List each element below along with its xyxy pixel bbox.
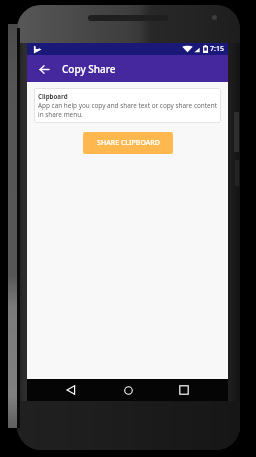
- staticText: 7:15: [210, 44, 224, 54]
- button[interactable]: Home: [119, 381, 137, 399]
- button[interactable]: Back: [62, 381, 80, 399]
- button[interactable]: Recent apps: [175, 381, 193, 399]
- staticText: App can help you copy and share text or …: [38, 101, 217, 119]
- staticText: SHARE CLIPBOARD: [97, 138, 160, 148]
- staticText: Copy Share: [62, 62, 116, 76]
- button[interactable]: Back: [34, 59, 54, 79]
- staticText: Clipboard: [38, 92, 68, 100]
- button[interactable]: SHARE CLIPBOARD: [83, 132, 173, 154]
